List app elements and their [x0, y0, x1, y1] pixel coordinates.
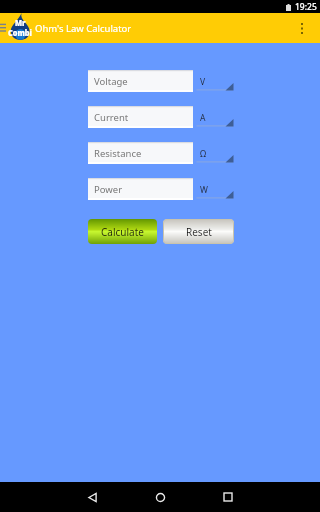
staticText: Reset	[186, 225, 212, 239]
button[interactable]: Menu	[0, 13, 10, 43]
button[interactable]: Voltage	[88, 70, 193, 92]
button[interactable]: Reset	[163, 219, 234, 244]
staticText: V	[200, 76, 206, 88]
button[interactable]: Resistance	[88, 142, 193, 164]
staticText: W	[200, 184, 208, 196]
button[interactable]: Home	[140, 482, 180, 512]
staticText: A	[200, 112, 206, 124]
staticText: 19:25	[295, 1, 317, 13]
button[interactable]: W	[196, 178, 237, 200]
button[interactable]: Calculate	[88, 219, 157, 244]
staticText: Resistance	[94, 147, 142, 160]
button[interactable]: Ω	[196, 142, 237, 164]
button[interactable]: Power	[88, 178, 193, 200]
staticText: Ω	[200, 148, 207, 160]
button[interactable]: Back	[72, 482, 112, 512]
staticText: Mr	[15, 17, 26, 29]
button[interactable]: V	[196, 70, 237, 92]
button[interactable]: A	[196, 106, 237, 128]
staticText: Voltage	[94, 75, 128, 88]
button[interactable]: Recent apps	[208, 482, 248, 512]
staticText: Current	[94, 111, 129, 124]
button[interactable]: More options	[291, 13, 313, 43]
staticText: Power	[94, 183, 123, 196]
button[interactable]: Current	[88, 106, 193, 128]
staticText: Calculate	[101, 225, 144, 239]
staticText: Combi	[8, 27, 32, 39]
staticText: Ohm's Law Calculator	[35, 22, 132, 35]
